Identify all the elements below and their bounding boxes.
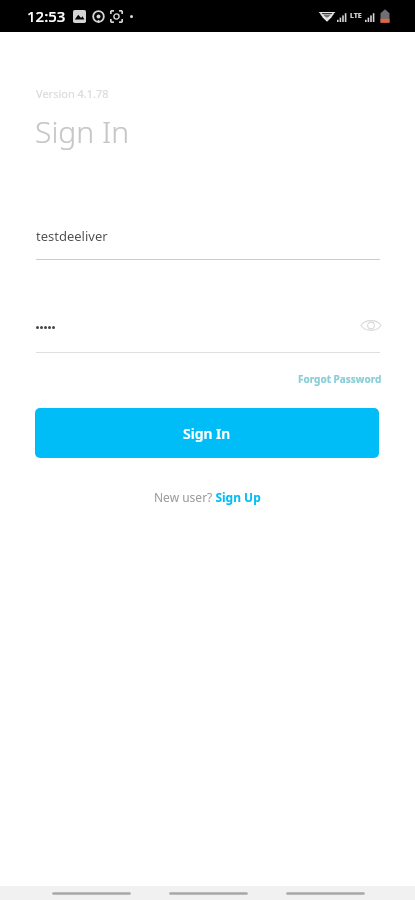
button[interactable]: New user? Sign Up [154,489,261,505]
staticText: Version 4.1.78 [36,86,109,101]
staticText: 12:53 [27,6,66,26]
staticText: Sign In [183,424,231,443]
button[interactable]: testdeeliver [36,220,380,260]
button[interactable]: Recent apps [286,886,365,900]
staticText: Sign In [35,111,130,152]
staticText: LTE [350,11,362,21]
button[interactable]: Home [169,886,248,900]
button[interactable]: Forgot Password [38,372,382,386]
staticText: New user? Sign Up [154,489,261,505]
button[interactable]: Sign In [35,408,379,458]
button[interactable]: Back [52,886,131,900]
button[interactable] [36,313,380,353]
staticText: testdeeliver [36,227,108,245]
button[interactable]: Show password [356,311,385,340]
staticText: Forgot Password [298,372,382,386]
